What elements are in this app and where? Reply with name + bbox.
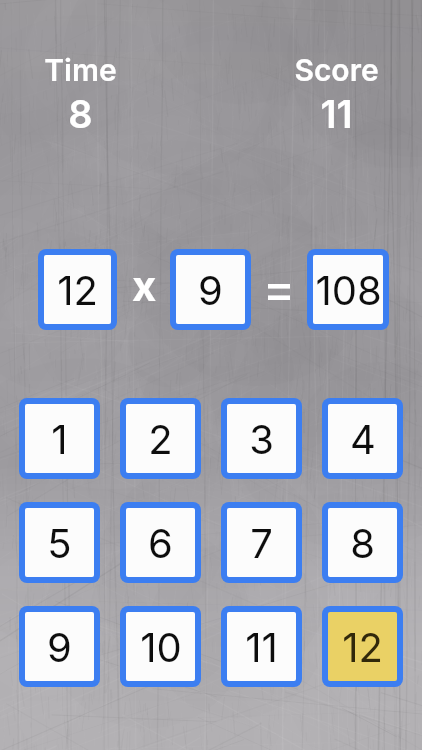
staticText: 11	[320, 91, 353, 137]
button[interactable]: 6	[126, 508, 195, 577]
button[interactable]: 5	[25, 508, 94, 577]
staticText: 9	[47, 623, 72, 671]
staticText: 8	[68, 91, 93, 137]
button[interactable]: 1	[25, 404, 94, 473]
button[interactable]: times	[126, 245, 162, 326]
button[interactable]: Time	[44, 52, 117, 137]
staticText: 5	[47, 519, 72, 567]
staticText: Score	[294, 52, 379, 88]
button[interactable]: Score	[293, 52, 379, 137]
button[interactable]: equals	[260, 249, 298, 330]
button[interactable]: 10	[126, 612, 195, 681]
button[interactable]: 12	[328, 612, 397, 681]
staticText: Time	[44, 52, 117, 88]
button[interactable]: 3	[227, 404, 296, 473]
button[interactable]: 12	[44, 255, 111, 324]
staticText: 1	[51, 415, 68, 463]
button[interactable]: 11	[227, 612, 296, 681]
button[interactable]: 4	[328, 404, 397, 473]
button[interactable]: 9	[25, 612, 94, 681]
staticText: x	[132, 260, 157, 311]
button[interactable]: 8	[328, 508, 397, 577]
staticText: 11	[245, 623, 278, 671]
staticText: 108	[315, 266, 382, 314]
staticText: 2	[148, 415, 173, 463]
staticText: 3	[249, 415, 274, 463]
staticText: 9	[198, 266, 223, 314]
staticText: 12	[57, 266, 98, 314]
staticText: 4	[350, 415, 376, 463]
staticText: 8	[350, 519, 375, 567]
staticText: 6	[148, 519, 173, 567]
button[interactable]: 9	[176, 255, 245, 324]
button[interactable]: 7	[227, 508, 296, 577]
button[interactable]: 2	[126, 404, 195, 473]
staticText: 7	[250, 519, 273, 567]
staticText: 12	[342, 623, 383, 671]
staticText: 10	[140, 623, 182, 671]
button[interactable]: 108	[313, 255, 383, 324]
